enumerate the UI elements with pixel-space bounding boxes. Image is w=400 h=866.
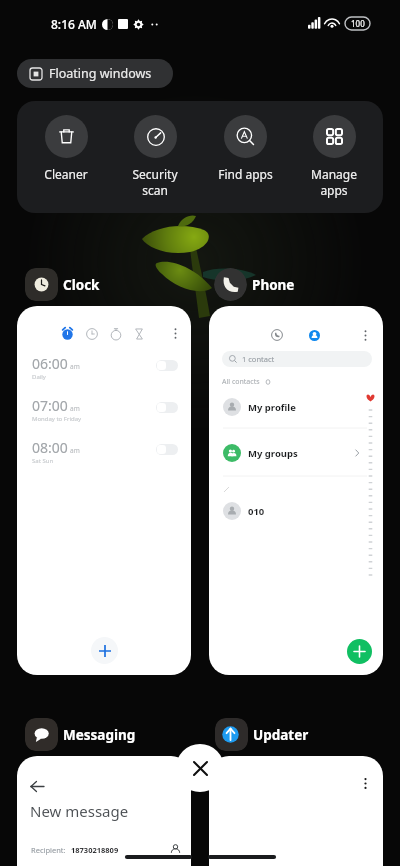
button[interactable]: Toggle alarm <box>156 402 178 413</box>
staticText: Monday to Friday <box>32 415 82 423</box>
staticText: Updater <box>253 726 309 744</box>
button[interactable]: Floating windows <box>17 59 173 88</box>
button[interactable]: Add contact <box>347 639 372 664</box>
button[interactable]: Contacts tab <box>309 330 320 341</box>
staticText: Find apps <box>218 166 273 182</box>
staticText: 07:00 <box>32 396 68 415</box>
button[interactable]: Recent calls <box>209 306 383 675</box>
button[interactable]: Find apps <box>204 115 286 182</box>
button[interactable]: More options <box>209 756 383 866</box>
button[interactable]: Stopwatch <box>110 328 122 340</box>
staticText: Sat Sun <box>32 457 54 465</box>
button[interactable]: Timer <box>133 328 145 340</box>
button[interactable]: My groups <box>223 444 361 462</box>
button[interactable]: Updater <box>215 718 309 751</box>
button[interactable]: Phone <box>214 268 295 301</box>
button[interactable]: 010 <box>223 502 361 520</box>
button[interactable]: More options <box>354 772 376 794</box>
staticText: My profile <box>248 401 296 414</box>
button[interactable]: Alarm <box>17 306 191 675</box>
staticText: Floating windows <box>49 65 152 82</box>
staticText: Phone <box>252 276 295 294</box>
staticText: Cleaner <box>44 166 88 182</box>
button[interactable]: More options <box>163 321 187 345</box>
button[interactable]: Toggle alarm <box>156 444 178 455</box>
staticText: New message <box>30 801 129 821</box>
staticText: Security scan <box>132 166 178 198</box>
button[interactable]: Security scan <box>114 115 196 198</box>
button[interactable]: 1 contact <box>222 351 372 367</box>
staticText: 06:00 <box>32 354 68 373</box>
staticText: am <box>70 362 80 371</box>
staticText: Manage apps <box>311 166 357 198</box>
staticText: am <box>70 446 80 455</box>
staticText: Daily <box>32 373 46 381</box>
staticText: All contacts <box>222 377 260 387</box>
staticText: My groups <box>248 447 298 460</box>
staticText: Clock <box>63 276 100 294</box>
staticText: 010 <box>248 505 265 518</box>
button[interactable]: My profile <box>223 398 361 416</box>
staticText: 100 <box>351 18 365 29</box>
button[interactable]: Clock <box>86 328 98 340</box>
button[interactable]: Alarm <box>61 327 74 340</box>
button[interactable]: Add alarm <box>91 637 118 664</box>
staticText: Recipient: <box>31 845 66 855</box>
button[interactable]: Recent calls <box>271 329 283 341</box>
staticText: 08:00 <box>32 438 68 457</box>
button[interactable]: Clock <box>25 268 100 301</box>
button[interactable]: Messaging <box>25 718 136 751</box>
staticText: 18730218809 <box>71 845 119 855</box>
button[interactable]: Manage apps <box>293 115 375 198</box>
button[interactable]: More options <box>353 323 377 347</box>
staticText: 8:16 AM <box>51 16 97 32</box>
button[interactable]: Cleaner <box>25 115 107 182</box>
staticText: 1 contact <box>242 354 275 364</box>
button[interactable]: Toggle alarm <box>156 360 178 371</box>
button[interactable]: Close all <box>176 744 224 792</box>
staticText: Messaging <box>63 726 136 744</box>
button[interactable]: New message <box>17 756 191 866</box>
staticText: am <box>70 404 80 413</box>
